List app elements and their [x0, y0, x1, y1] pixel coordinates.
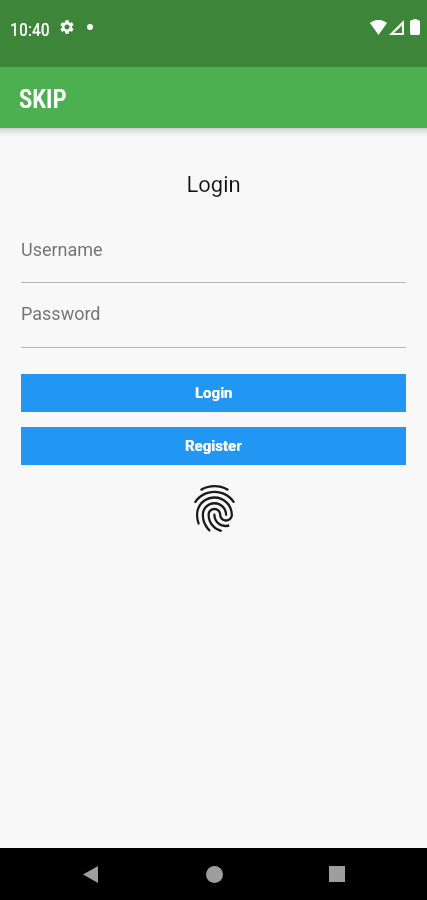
button[interactable]: Username [21, 228, 406, 282]
staticText: SKIP [19, 85, 67, 114]
button[interactable]: SKIP [8, 67, 78, 128]
button[interactable]: Login [21, 374, 406, 412]
staticText: Password [21, 303, 101, 324]
staticText: Username [21, 239, 103, 260]
button[interactable]: Home [190, 850, 238, 898]
staticText: Register [185, 437, 242, 455]
button[interactable]: Back [66, 850, 114, 898]
staticText: Login [195, 384, 233, 402]
button[interactable]: Password [21, 292, 406, 347]
staticText: Login [0, 172, 427, 198]
button[interactable]: Register [21, 427, 406, 465]
button[interactable]: Fingerprint login [192, 485, 237, 532]
button[interactable]: Recent apps [313, 850, 361, 898]
staticText: 10:40 [10, 19, 50, 40]
